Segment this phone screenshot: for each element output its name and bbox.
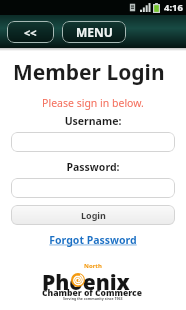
staticText: Password: xyxy=(0,160,186,174)
button[interactable] xyxy=(11,132,175,152)
staticText: Login xyxy=(81,209,106,221)
staticText: Phoenix xyxy=(42,268,130,297)
staticText: Member Login xyxy=(13,58,165,87)
staticText: 4:16 xyxy=(164,1,183,14)
button[interactable]: MENU xyxy=(62,21,126,43)
button[interactable] xyxy=(11,178,175,198)
staticText: Please sign in below. xyxy=(0,96,186,110)
staticText: North xyxy=(84,262,102,270)
button[interactable]: Back xyxy=(7,21,54,43)
staticText: Forgot Password xyxy=(0,233,186,247)
staticText: MENU xyxy=(76,24,113,40)
staticText: Username: xyxy=(0,114,186,128)
staticText: << xyxy=(24,25,37,40)
staticText: Chamber of Commerce xyxy=(42,287,142,299)
staticText: Serving the community since 1963 xyxy=(63,296,123,301)
button[interactable]: Login xyxy=(11,205,175,225)
button[interactable]: Forgot Password xyxy=(0,233,186,247)
